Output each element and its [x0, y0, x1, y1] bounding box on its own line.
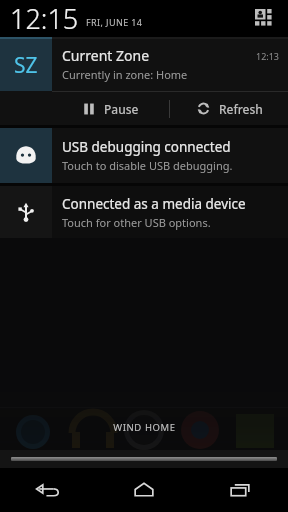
button[interactable]: Home [96, 468, 192, 512]
staticText: Connected as a media device [62, 195, 246, 213]
staticText: FRI, JUNE 14 [86, 16, 143, 28]
staticText: 12:15 [10, 0, 79, 37]
button[interactable]: Quick settings [250, 4, 280, 34]
staticText: Currently in zone: Home [62, 67, 188, 82]
button[interactable]: SZ [0, 39, 288, 91]
staticText: 12:13 [256, 50, 280, 62]
staticText: WIND HOME [113, 421, 176, 434]
staticText: Current Zone [62, 46, 256, 65]
button[interactable]: Recent apps [192, 468, 288, 512]
staticText: Touch for other USB options. [62, 215, 211, 230]
button[interactable]: USB debugging connected [0, 128, 288, 183]
staticText: Pause [104, 101, 139, 117]
button[interactable]: Back [0, 468, 96, 512]
staticText: USB debugging connected [62, 138, 231, 156]
button[interactable]: Pause [52, 92, 169, 125]
staticText: Touch to disable USB debugging. [62, 158, 233, 173]
button[interactable]: Refresh [170, 92, 288, 125]
staticText: SZ [14, 51, 38, 80]
button[interactable]: Connected as a media device [0, 186, 288, 238]
staticText: Refresh [219, 101, 263, 117]
